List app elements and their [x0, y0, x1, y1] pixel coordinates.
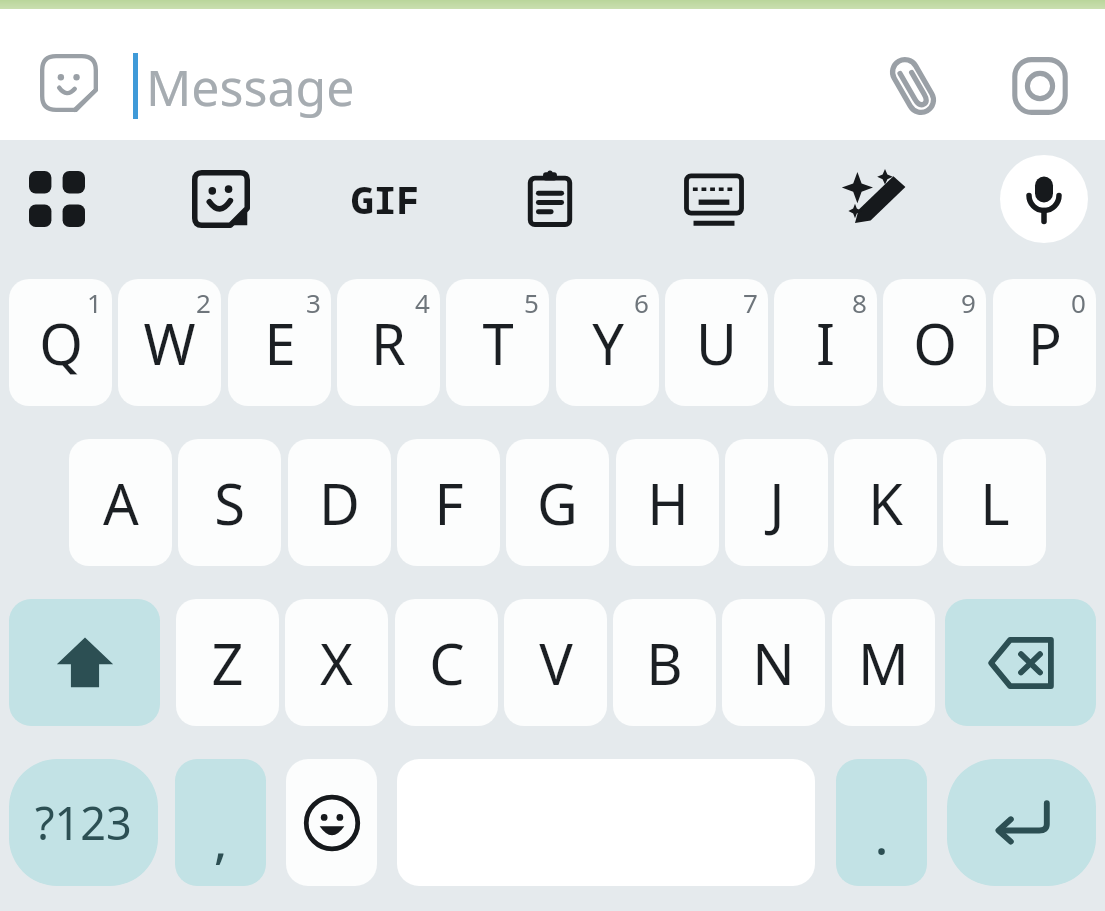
- button[interactable]: Enter: [947, 759, 1096, 886]
- button[interactable]: Attach: [878, 51, 948, 121]
- staticText: K: [868, 465, 903, 541]
- button[interactable]: Write with AI: [835, 155, 923, 243]
- staticText: G: [537, 465, 578, 541]
- staticText: 6: [634, 285, 649, 320]
- staticText: Y: [592, 305, 624, 381]
- staticText: Message: [146, 53, 355, 121]
- button[interactable]: Q: [9, 279, 112, 406]
- button[interactable]: Camera: [1005, 51, 1075, 121]
- staticText: O: [913, 305, 957, 381]
- button[interactable]: L: [943, 439, 1046, 566]
- button[interactable]: S: [178, 439, 281, 566]
- button[interactable]: Stickers: [34, 48, 104, 118]
- button[interactable]: Shift: [9, 599, 160, 726]
- button[interactable]: C: [395, 599, 498, 726]
- staticText: U: [696, 305, 737, 381]
- staticText: V: [539, 625, 573, 701]
- staticText: ,: [214, 808, 228, 873]
- button[interactable]: B: [613, 599, 716, 726]
- staticText: N: [752, 625, 795, 701]
- staticText: 5: [524, 285, 539, 320]
- button[interactable]: U: [665, 279, 768, 406]
- staticText: ?123: [35, 792, 132, 853]
- staticText: E: [264, 305, 296, 381]
- button[interactable]: Stickers: [177, 155, 265, 243]
- button[interactable]: Z: [176, 599, 279, 726]
- staticText: L: [980, 465, 1010, 541]
- button[interactable]: G: [506, 439, 609, 566]
- button[interactable]: W: [118, 279, 221, 406]
- staticText: 8: [852, 285, 867, 320]
- button[interactable]: Voice input: [1000, 155, 1088, 243]
- staticText: 7: [743, 285, 758, 320]
- staticText: M: [858, 625, 909, 701]
- staticText: J: [769, 465, 785, 541]
- button[interactable]: D: [288, 439, 391, 566]
- staticText: 0: [1071, 285, 1086, 320]
- button[interactable]: Apps: [13, 155, 101, 243]
- button[interactable]: T: [446, 279, 549, 406]
- staticText: Z: [211, 625, 244, 701]
- button[interactable]: J: [725, 439, 828, 566]
- staticText: F: [434, 465, 464, 541]
- button[interactable]: ?123: [9, 759, 158, 886]
- staticText: C: [429, 625, 465, 701]
- staticText: 2: [196, 285, 211, 320]
- staticText: GIF: [351, 173, 420, 225]
- staticText: 1: [87, 285, 102, 320]
- button[interactable]: Backspace: [945, 599, 1096, 726]
- button[interactable]: H: [616, 439, 719, 566]
- staticText: 4: [415, 285, 430, 320]
- staticText: W: [143, 305, 196, 381]
- button[interactable]: F: [397, 439, 500, 566]
- staticText: P: [1028, 305, 1062, 381]
- staticText: Q: [39, 305, 83, 381]
- staticText: S: [214, 465, 245, 541]
- staticText: I: [816, 305, 835, 381]
- button[interactable]: Period: [836, 759, 927, 886]
- button[interactable]: X: [285, 599, 388, 726]
- button[interactable]: R: [337, 279, 440, 406]
- button[interactable]: Comma: [175, 759, 266, 886]
- staticText: D: [319, 465, 360, 541]
- staticText: .: [875, 804, 889, 869]
- staticText: 3: [306, 285, 321, 320]
- staticText: 9: [961, 285, 976, 320]
- button[interactable]: P: [993, 279, 1096, 406]
- button[interactable]: Clipboard: [506, 155, 594, 243]
- button[interactable]: M: [832, 599, 935, 726]
- staticText: X: [320, 625, 353, 701]
- button[interactable]: E: [228, 279, 331, 406]
- button[interactable]: I: [774, 279, 877, 406]
- staticText: A: [103, 465, 139, 541]
- button[interactable]: Y: [556, 279, 659, 406]
- button[interactable]: Keyboard settings: [670, 155, 758, 243]
- staticText: H: [647, 465, 689, 541]
- button[interactable]: Emoji: [286, 759, 377, 886]
- staticText: R: [371, 305, 406, 381]
- button[interactable]: N: [722, 599, 825, 726]
- button[interactable]: K: [834, 439, 937, 566]
- staticText: T: [482, 305, 514, 381]
- button[interactable]: V: [504, 599, 607, 726]
- button[interactable]: O: [883, 279, 986, 406]
- button[interactable]: GIF: [341, 155, 429, 243]
- staticText: B: [646, 625, 683, 701]
- button[interactable]: A: [69, 439, 172, 566]
